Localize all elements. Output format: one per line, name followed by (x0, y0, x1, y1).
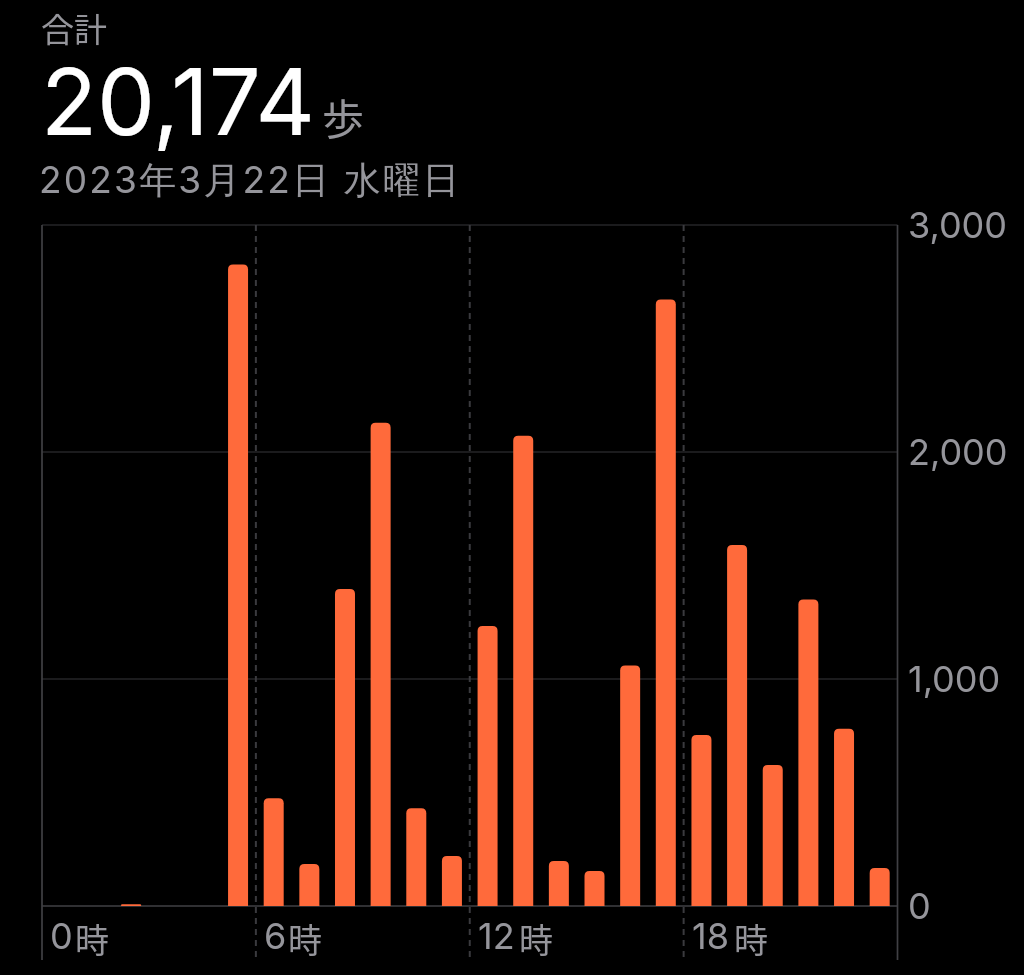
staticText: 20,174 (41, 46, 315, 157)
staticText: 2023年3月22日 水曜日 (39, 157, 462, 204)
staticText: 時 (734, 914, 768, 963)
staticText: 3,000 (908, 203, 1008, 247)
staticText: 18 (692, 914, 729, 958)
button[interactable]: Hourly step chart (42, 225, 898, 960)
staticText: 12 (478, 914, 515, 958)
staticText: 時 (288, 914, 322, 963)
staticText: 0 (908, 884, 931, 928)
staticText: 時 (519, 914, 553, 963)
staticText: 6 (264, 914, 287, 958)
staticText: 時 (75, 914, 109, 963)
staticText: 合計 (41, 4, 107, 52)
staticText: 1,000 (908, 657, 1001, 701)
staticText: 歩 (322, 86, 365, 147)
staticText: 2,000 (908, 430, 1008, 474)
staticText: 0 (50, 914, 73, 958)
